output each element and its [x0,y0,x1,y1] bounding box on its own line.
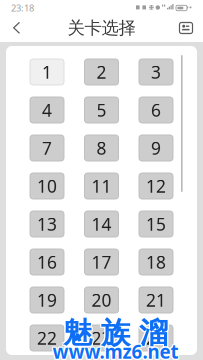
button[interactable]: 4 [30,97,64,123]
staticText: 14 [91,212,111,235]
staticText: 7 [42,136,52,159]
button[interactable]: 21 [139,287,173,313]
button[interactable]: 22 [30,325,64,351]
button[interactable]: 18 [139,249,173,275]
staticText: www.mz6.net [53,339,179,360]
staticText: 9 [151,136,161,159]
button[interactable]: 17 [84,249,118,275]
button[interactable]: 24 [139,325,173,351]
staticText: 13 [37,212,57,235]
staticText: 10 [37,174,57,197]
staticText: 魅 族 溜 [63,315,168,351]
button[interactable]: 8 [84,135,118,161]
staticText: 魅 族 溜 [63,314,168,350]
staticText: 21 [146,288,166,311]
staticText: 16 [37,250,57,273]
staticText: 18 [146,250,166,273]
staticText: 20 [91,288,111,311]
staticText: 15 [146,212,166,235]
button[interactable]: 20 [84,287,118,313]
button[interactable]: 2 [84,59,118,85]
staticText: 魅 族 溜 [62,314,167,350]
staticText: 关卡选择 [67,17,135,39]
button[interactable]: 返回 [1,16,33,40]
staticText: 22 [37,326,57,349]
staticText: 19 [37,288,57,311]
staticText: 8 [96,136,106,159]
staticText: 23 [91,326,111,349]
staticText: 魅 族 溜 [64,316,169,352]
button[interactable]: 9 [139,135,173,161]
button[interactable]: 5 [84,97,118,123]
staticText: www.mz6.net [52,340,178,360]
button[interactable]: 12 [139,173,173,199]
button[interactable]: 1 [30,59,64,85]
staticText: 魅 族 溜 [62,315,167,351]
staticText: 魅 族 溜 [64,314,169,350]
staticText: 1 [42,60,52,83]
staticText: 2 [96,60,106,83]
staticText: 23:18 [11,2,34,14]
staticText: 魅 族 溜 [64,315,169,351]
staticText: 4 [42,98,52,121]
button[interactable]: 3 [139,59,173,85]
button[interactable]: 10 [30,173,64,199]
staticText: 12 [146,174,166,197]
button[interactable]: 11 [84,173,118,199]
staticText: www.mz6.net [53,338,179,360]
staticText: 17 [91,250,111,273]
button[interactable]: 19 [30,287,64,313]
button[interactable]: 23 [84,325,118,351]
staticText: 魅 族 溜 [63,316,168,352]
staticText: www.mz6.net [52,338,178,360]
button[interactable]: 16 [30,249,64,275]
staticText: 24 [146,326,166,349]
staticText: www.mz6.net [51,338,177,360]
staticText: www.mz6.net [51,340,177,360]
button[interactable]: 13 [30,211,64,237]
staticText: www.mz6.net [53,340,179,360]
button[interactable]: 14 [84,211,118,237]
button[interactable]: 关卡详情 [170,16,202,40]
staticText: www.mz6.net [52,339,178,360]
staticText: 3 [151,60,161,83]
staticText: 魅 族 溜 [62,316,167,352]
staticText: 5 [96,98,106,121]
staticText: 6 [151,98,161,121]
staticText: www.mz6.net [51,339,177,360]
button[interactable]: 7 [30,135,64,161]
button[interactable]: 6 [139,97,173,123]
button[interactable]: 15 [139,211,173,237]
staticText: 11 [91,174,111,197]
